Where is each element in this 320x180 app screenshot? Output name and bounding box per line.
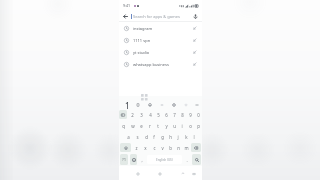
button[interactable]: 9 bbox=[186, 109, 194, 120]
button[interactable]: Recents bbox=[133, 169, 142, 178]
button[interactable]: instagram bbox=[119, 22, 202, 34]
staticText: l bbox=[193, 134, 195, 140]
button[interactable]: v bbox=[158, 142, 166, 153]
button[interactable]: d bbox=[142, 131, 150, 142]
button[interactable]: yt studio bbox=[119, 46, 202, 58]
staticText: 9 bbox=[189, 112, 192, 118]
button[interactable]: Clipboard bbox=[135, 102, 141, 108]
button[interactable]: p bbox=[194, 120, 202, 131]
button[interactable]: English (US) bbox=[147, 155, 182, 164]
staticText: 9:41 bbox=[123, 3, 131, 8]
button[interactable]: Voice search bbox=[191, 12, 200, 21]
staticText: f bbox=[153, 134, 155, 140]
staticText: 3 bbox=[140, 112, 143, 118]
button[interactable]: Search bbox=[192, 154, 201, 165]
button[interactable]: 1 bbox=[119, 109, 128, 120]
button[interactable]: Stickers bbox=[147, 102, 153, 108]
staticText: whatsapp business bbox=[133, 62, 169, 67]
staticText: w bbox=[131, 123, 135, 129]
button[interactable]: l bbox=[190, 131, 198, 142]
button[interactable]: Shift bbox=[120, 143, 131, 152]
button[interactable]: Hide keyboard bbox=[189, 169, 198, 178]
button[interactable]: x bbox=[141, 142, 150, 153]
staticText: 6 bbox=[165, 112, 168, 118]
staticText: Search for apps & games bbox=[133, 14, 180, 19]
button[interactable]: , bbox=[138, 153, 146, 166]
button[interactable]: m bbox=[182, 142, 190, 153]
button[interactable]: Emoji bbox=[130, 154, 137, 165]
button[interactable]: h bbox=[166, 131, 174, 142]
staticText: x bbox=[144, 145, 147, 151]
button[interactable]: q bbox=[119, 120, 128, 131]
staticText: 1 bbox=[125, 100, 130, 109]
staticText: j bbox=[177, 134, 179, 140]
button[interactable]: k bbox=[182, 131, 190, 142]
button[interactable]: g bbox=[158, 131, 166, 142]
staticText: 0 bbox=[197, 112, 200, 118]
staticText: q bbox=[122, 123, 125, 129]
button[interactable]: o bbox=[186, 120, 194, 131]
button[interactable]: Backspace bbox=[191, 143, 201, 152]
staticText: , bbox=[141, 157, 143, 163]
staticText: d bbox=[145, 134, 148, 140]
button[interactable]: f bbox=[150, 131, 158, 142]
button[interactable]: Symbols bbox=[120, 154, 128, 165]
button[interactable]: Back bbox=[178, 169, 187, 178]
button[interactable]: Settings bbox=[171, 102, 177, 108]
staticText: 7 bbox=[173, 112, 176, 118]
staticText: b bbox=[169, 145, 172, 151]
button[interactable]: y bbox=[162, 120, 170, 131]
button[interactable]: More bbox=[194, 102, 200, 108]
staticText: i bbox=[181, 123, 183, 129]
staticText: s bbox=[136, 134, 139, 140]
button[interactable]: Home bbox=[155, 169, 164, 178]
staticText: z bbox=[135, 145, 138, 151]
button[interactable]: r bbox=[146, 120, 154, 131]
staticText: o bbox=[189, 123, 192, 129]
staticText: yt studio bbox=[133, 50, 150, 55]
button[interactable]: 2 bbox=[128, 109, 137, 120]
button[interactable]: t bbox=[154, 120, 162, 131]
button[interactable]: 8 bbox=[178, 109, 186, 120]
staticText: h bbox=[169, 134, 172, 140]
button[interactable]: u bbox=[170, 120, 178, 131]
button[interactable]: 0 bbox=[194, 109, 202, 120]
staticText: ?1 bbox=[122, 157, 127, 163]
staticText: r bbox=[149, 123, 151, 129]
button[interactable]: Back bbox=[121, 12, 130, 21]
button[interactable]: a bbox=[124, 131, 133, 142]
staticText: g bbox=[161, 134, 164, 140]
button[interactable]: 7 bbox=[170, 109, 178, 120]
staticText: v bbox=[161, 145, 164, 151]
button[interactable]: 1111 vpn bbox=[119, 34, 202, 46]
button[interactable]: Clipboard bbox=[119, 110, 127, 119]
staticText: e bbox=[140, 123, 143, 129]
staticText: 1 bbox=[122, 112, 125, 118]
staticText: . bbox=[186, 157, 188, 163]
staticText: instagram bbox=[133, 26, 153, 31]
staticText: m bbox=[184, 145, 189, 151]
button[interactable]: j bbox=[174, 131, 182, 142]
button[interactable]: n bbox=[174, 142, 182, 153]
button[interactable]: 3 bbox=[137, 109, 146, 120]
button[interactable]: i bbox=[178, 120, 186, 131]
button[interactable]: Theme bbox=[183, 102, 189, 108]
button[interactable]: c bbox=[150, 142, 158, 153]
button[interactable]: Translate bbox=[159, 102, 165, 108]
button[interactable]: e bbox=[137, 120, 146, 131]
button[interactable]: z bbox=[132, 142, 141, 153]
staticText: 2 bbox=[131, 112, 134, 118]
staticText: 8 bbox=[181, 112, 184, 118]
staticText: English (US) bbox=[156, 158, 173, 162]
button[interactable]: b bbox=[166, 142, 174, 153]
staticText: n bbox=[177, 145, 180, 151]
button[interactable]: w bbox=[128, 120, 137, 131]
staticText: a bbox=[127, 134, 130, 140]
button[interactable]: 5 bbox=[154, 109, 162, 120]
button[interactable]: s bbox=[133, 131, 142, 142]
staticText: 5 bbox=[157, 112, 160, 118]
button[interactable]: whatsapp business bbox=[119, 58, 202, 70]
button[interactable]: 4 bbox=[146, 109, 154, 120]
button[interactable]: 6 bbox=[162, 109, 170, 120]
